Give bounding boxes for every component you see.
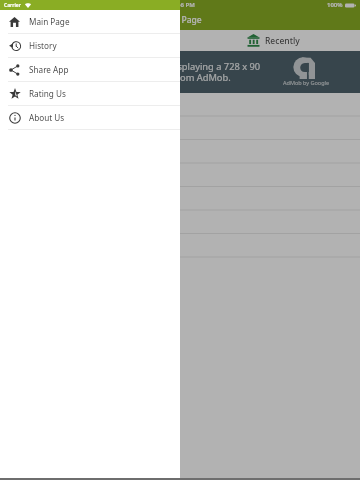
button[interactable]: Home (0, 10, 180, 33)
other: Home (9, 17, 20, 27)
staticText: Test mode: You are displaying a 728 x 90 (84, 60, 261, 73)
button[interactable]: About Us (0, 106, 180, 129)
staticText: Recently (265, 35, 300, 47)
staticText: History (29, 40, 57, 51)
button[interactable] (0, 189, 360, 213)
staticText: 100% (327, 1, 343, 9)
staticText: AdMob by Google (283, 79, 330, 86)
button[interactable] (0, 237, 360, 261)
staticText: About Us (29, 112, 65, 123)
button[interactable]: Recently (180, 30, 360, 51)
button[interactable] (0, 213, 360, 237)
staticText: Share App (29, 64, 69, 75)
button[interactable]: History (0, 34, 180, 57)
button[interactable] (0, 165, 360, 189)
button[interactable]: Rating Us (0, 82, 180, 105)
button[interactable]: Share App (0, 58, 180, 81)
button[interactable] (0, 93, 360, 117)
button[interactable] (0, 117, 360, 141)
staticText: Rating Us (29, 88, 66, 99)
staticText: Carrier (4, 2, 21, 9)
staticText: Main Page (159, 14, 202, 26)
staticText: test ad from AdMob. (141, 71, 231, 84)
staticText: Main Page (29, 16, 70, 27)
button[interactable] (0, 141, 360, 165)
button[interactable]: Popular (0, 30, 180, 51)
staticText: 9:36 PM (172, 1, 195, 9)
